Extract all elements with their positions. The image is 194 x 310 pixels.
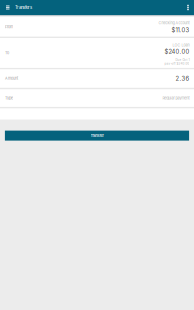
- button[interactable]: More options: [182, 0, 194, 15]
- staticText: Transfers: [15, 5, 32, 10]
- staticText: To: [5, 51, 9, 55]
- button[interactable]: Transfers: [15, 1, 32, 14]
- button[interactable]: Menu: [0, 0, 15, 15]
- button[interactable]: Transfer: [5, 131, 189, 141]
- button[interactable]: Amount: [0, 69, 194, 89]
- button[interactable]: From: [0, 15, 194, 38]
- staticText: Type: [5, 96, 13, 100]
- staticText: 2.36: [175, 75, 189, 82]
- staticText: Checking Account: [158, 21, 189, 25]
- staticText: From: [5, 25, 13, 29]
- staticText: Due Oct 1: [175, 58, 189, 62]
- staticText: pay-off $240.00: [164, 62, 189, 65]
- staticText: Amount: [5, 76, 18, 81]
- staticText: $11.03: [171, 27, 189, 34]
- button[interactable]: To: [0, 38, 194, 69]
- staticText: LOC Loan: [172, 43, 189, 47]
- staticText: Transfer: [90, 133, 103, 138]
- staticText: Regular payment: [162, 96, 189, 100]
- staticText: $240.00: [164, 48, 189, 55]
- button[interactable]: Type: [0, 89, 194, 108]
